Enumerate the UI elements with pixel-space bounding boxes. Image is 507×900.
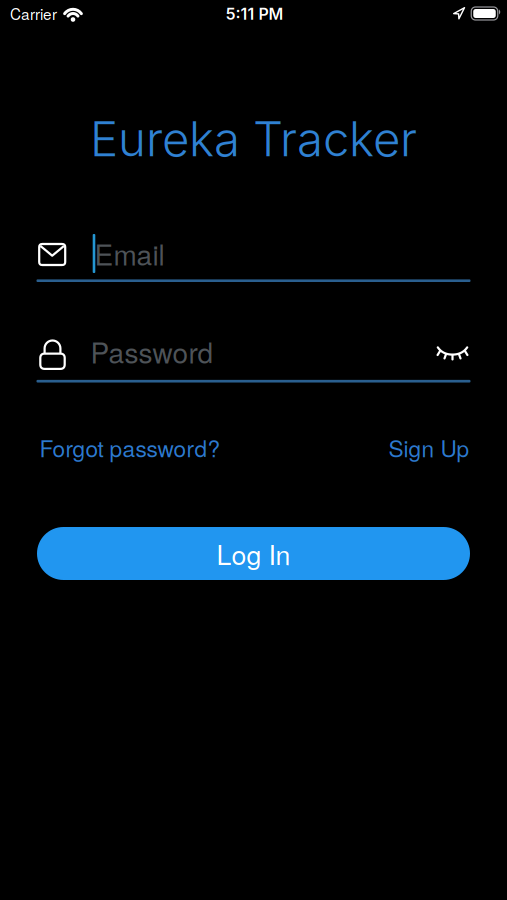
button[interactable]: Log In — [37, 527, 470, 580]
button[interactable]: Password — [36, 332, 470, 384]
staticText: Password — [90, 331, 213, 372]
staticText: Log In — [216, 534, 290, 573]
staticText: Carrier — [10, 2, 57, 24]
staticText: Sign Up — [388, 431, 469, 464]
staticText: 5:11 PM — [225, 4, 283, 24]
button[interactable]: Email — [36, 232, 470, 284]
staticText: Forgot password? — [39, 431, 220, 464]
button[interactable] — [437, 345, 468, 361]
button[interactable]: Sign Up — [388, 431, 469, 464]
staticText: Eureka Tracker — [90, 110, 417, 168]
staticText: Email — [94, 233, 164, 274]
button[interactable]: Forgot password? — [39, 431, 220, 464]
